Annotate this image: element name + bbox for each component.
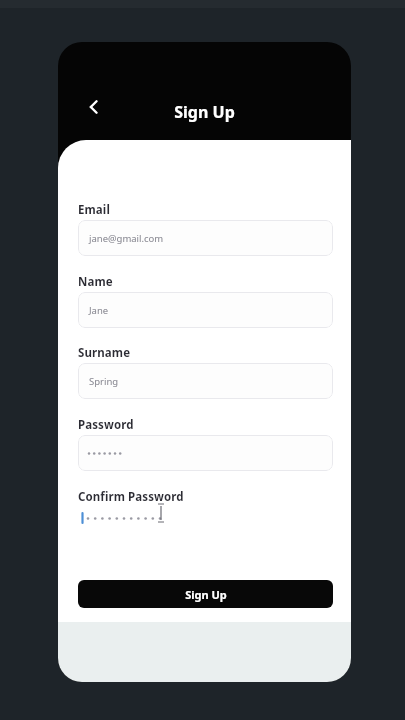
- staticText: Email: [78, 202, 110, 218]
- button[interactable]: jane@gmail.com: [78, 220, 333, 256]
- staticText: Spring: [89, 375, 119, 388]
- staticText: Jane: [89, 304, 109, 317]
- staticText: Confirm Password: [78, 489, 184, 505]
- staticText: Name: [78, 274, 113, 290]
- button[interactable]: Jane: [78, 292, 333, 328]
- button[interactable]: Back: [80, 93, 108, 121]
- staticText: Sign Up: [185, 587, 227, 602]
- button[interactable]: [78, 435, 333, 471]
- staticText: Surname: [78, 345, 131, 361]
- staticText: jane@gmail.com: [89, 232, 164, 245]
- button[interactable]: Sign Up: [78, 580, 333, 608]
- button[interactable]: Spring: [78, 363, 333, 399]
- staticText: Sign Up: [174, 101, 235, 123]
- staticText: Password: [78, 417, 134, 433]
- button[interactable]: [78, 506, 333, 530]
